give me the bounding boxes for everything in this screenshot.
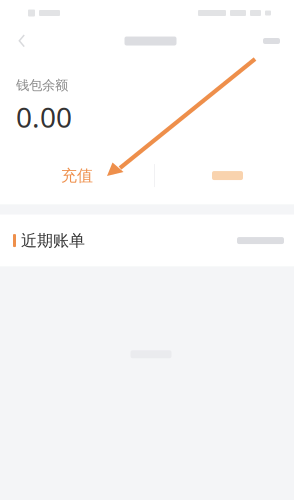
staticText: 钱包余额 [16,77,68,93]
staticText: 近期账单 [21,231,85,250]
button[interactable]: 充值 [0,159,154,193]
button[interactable]: 更多 [249,26,280,56]
button[interactable]: 提现 [155,159,294,193]
staticText: 0.00 [16,98,72,136]
staticText: 充值 [61,166,93,185]
button[interactable]: 全部账单 [237,226,284,256]
button[interactable]: 返回 [4,26,40,56]
